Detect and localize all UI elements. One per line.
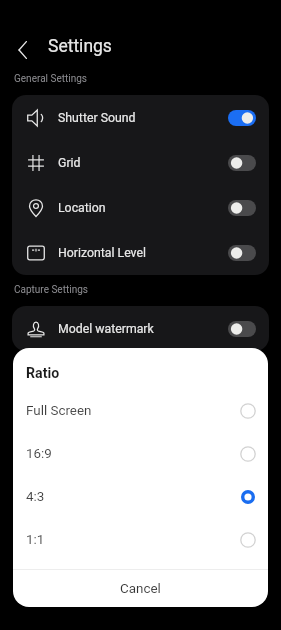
button[interactable]: Location [12,185,269,230]
button[interactable]: 16:9 [13,432,268,475]
staticText: Cancel [120,581,161,597]
staticText: Grid [58,156,81,170]
button[interactable]: Cancel [13,570,268,607]
button[interactable]: Shutter Sound [12,95,269,140]
staticText: 16:9 [26,446,52,462]
staticText: Full Screen [26,403,92,419]
button[interactable]: Full Screen [13,389,268,432]
staticText: 4:3 [26,489,45,505]
staticText: General Settings [14,73,87,85]
staticText: Capture Settings [14,284,88,296]
staticText: Ratio [26,365,60,382]
button[interactable]: Model watermark [12,306,269,351]
button[interactable]: Grid [12,140,269,185]
staticText: Location [58,201,106,215]
staticText: Settings [48,36,112,57]
staticText: Model watermark [58,322,154,336]
staticText: 1:1 [26,532,45,548]
button[interactable]: Back [0,26,48,66]
button[interactable]: 4:3 [13,475,268,518]
staticText: Shutter Sound [58,111,136,125]
button[interactable]: Horizontal Level [12,230,269,275]
staticText: Horizontal Level [58,246,146,260]
button[interactable]: 1:1 [13,518,268,561]
